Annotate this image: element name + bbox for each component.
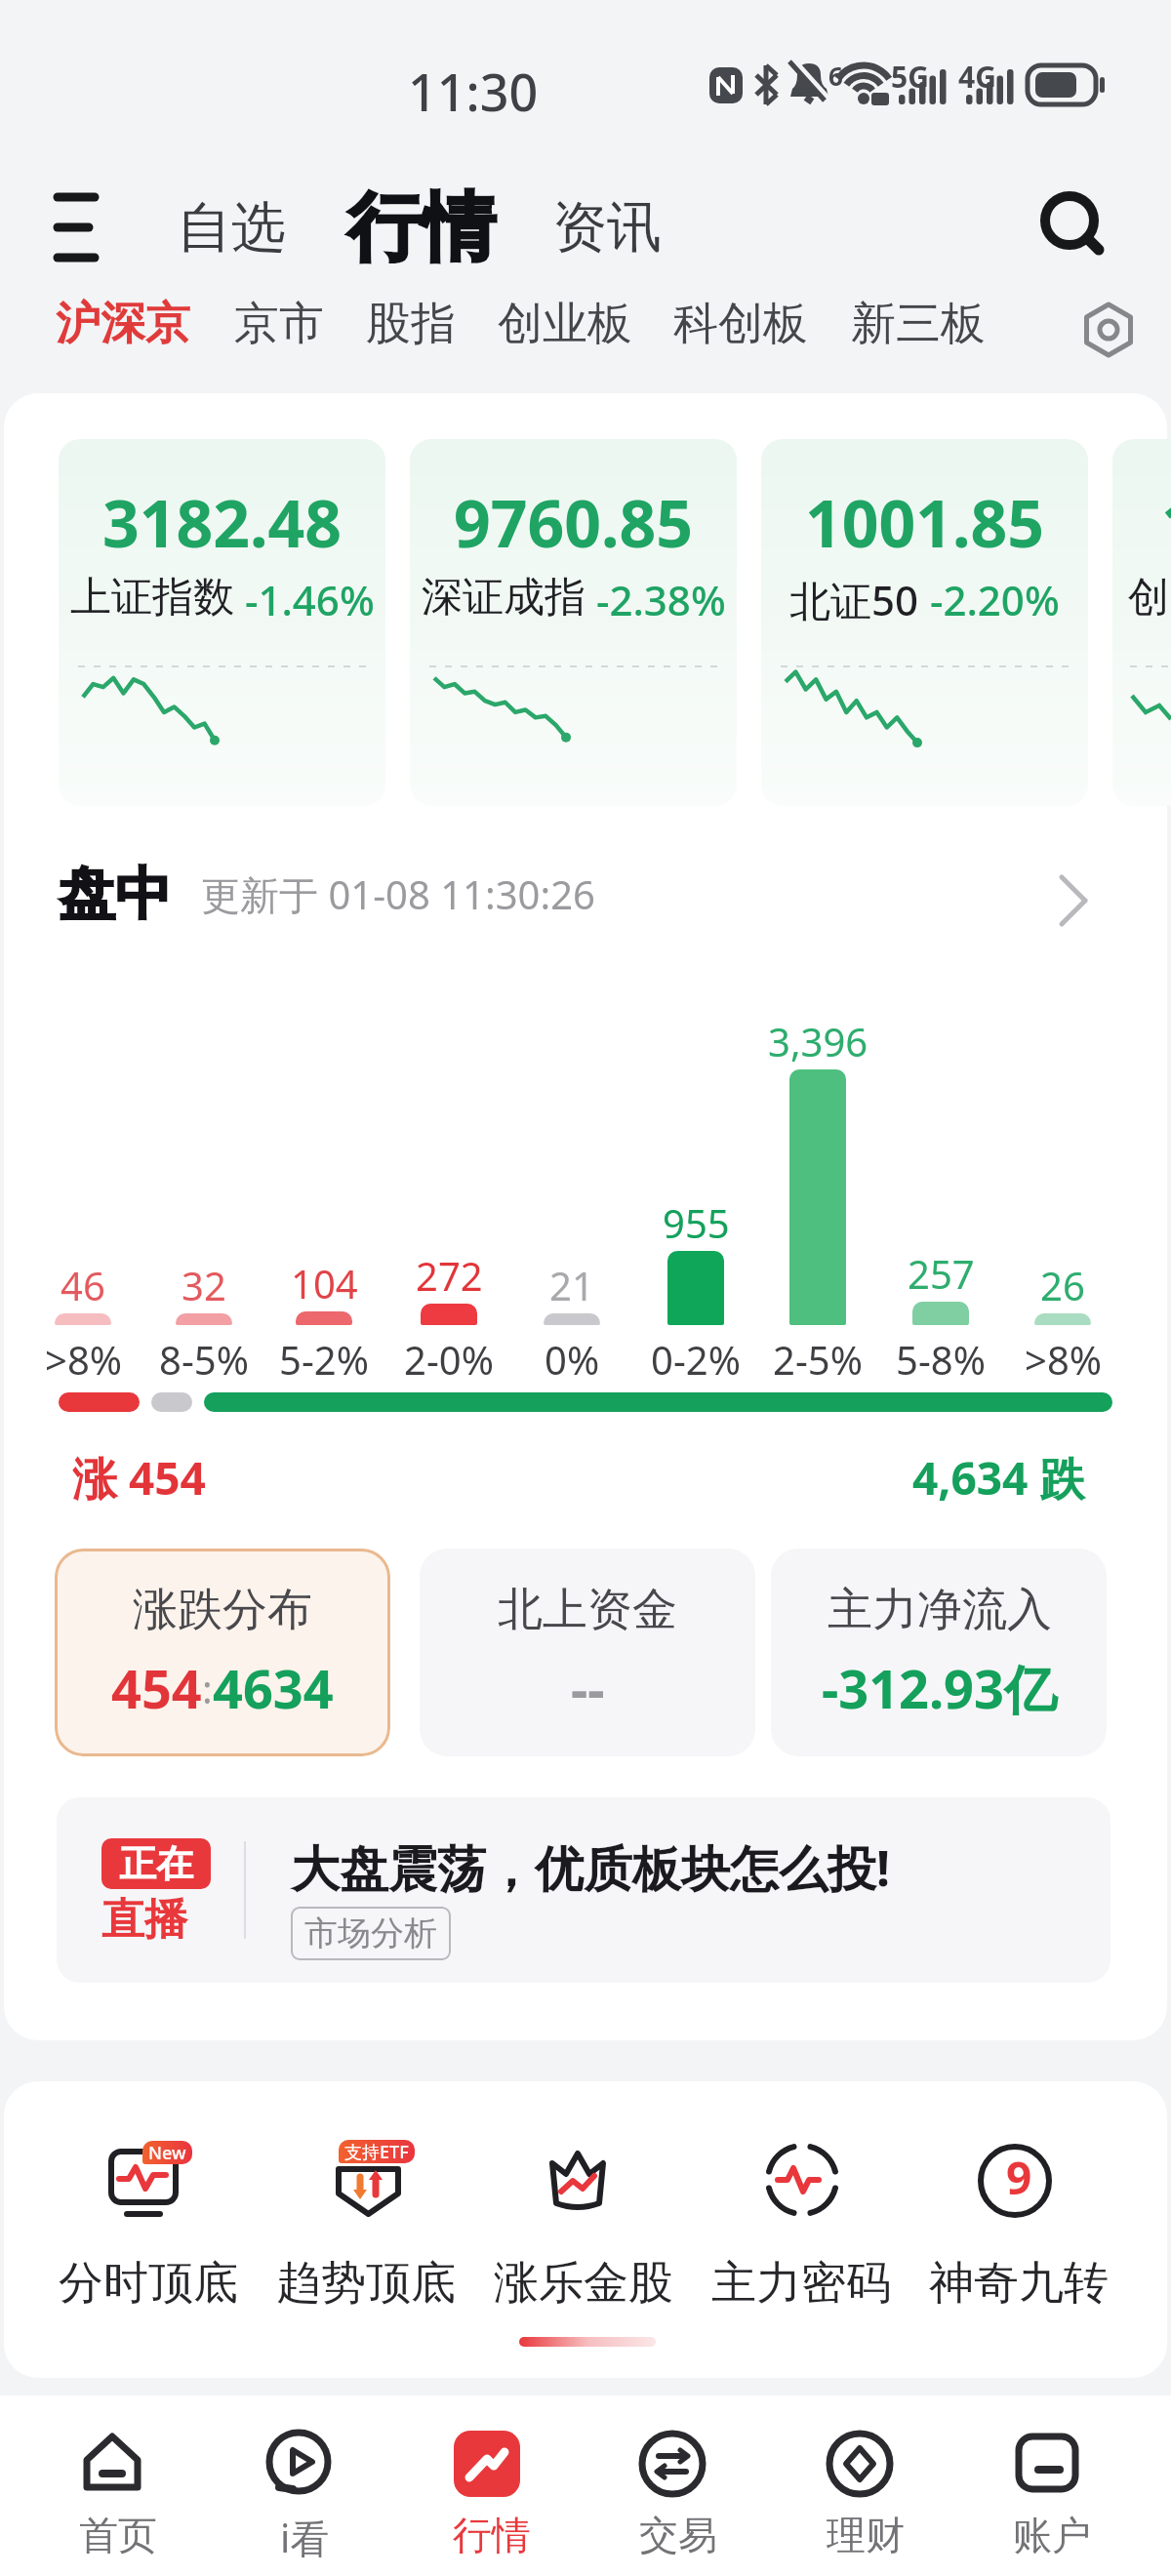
staticText: 4G bbox=[958, 57, 996, 97]
button[interactable]: 理财 bbox=[783, 2405, 949, 2571]
staticText: 更新于 01-08 11:30:26 bbox=[201, 867, 595, 921]
button[interactable]: 3182.48 bbox=[59, 439, 385, 806]
staticText: 11:30 bbox=[408, 57, 539, 126]
staticText: 创 bbox=[1128, 572, 1169, 624]
staticText: 大盘震荡，优质板块怎么投! bbox=[291, 1834, 891, 1901]
staticText: 主力净流入 bbox=[828, 1582, 1052, 1638]
staticText: >8% bbox=[1025, 1333, 1102, 1386]
button[interactable]: 涨跌分布 bbox=[55, 1549, 390, 1756]
staticText: 直播 bbox=[101, 1893, 187, 1947]
button[interactable]: 自选 bbox=[177, 193, 286, 262]
button[interactable]: 资讯 bbox=[552, 193, 662, 262]
staticText: 北证50 bbox=[789, 572, 919, 627]
staticText: 神奇九转 bbox=[929, 2255, 1109, 2312]
button[interactable]: 账户 bbox=[969, 2405, 1135, 2571]
staticText: 3,396 bbox=[768, 1015, 868, 1067]
staticText: -2.20% bbox=[919, 572, 1060, 627]
staticText: 32 bbox=[182, 1259, 226, 1311]
button[interactable]: 沪深京 bbox=[56, 296, 190, 352]
staticText: -2.38% bbox=[585, 572, 726, 627]
button[interactable]: 北上资金 bbox=[420, 1549, 755, 1756]
staticText: 账户 bbox=[1013, 2511, 1091, 2559]
staticText: 4634 bbox=[213, 1652, 334, 1724]
button[interactable]: 主力净流入 bbox=[771, 1549, 1107, 1756]
staticText: -- bbox=[571, 1652, 605, 1724]
button[interactable]: i看 bbox=[222, 2405, 387, 2571]
staticText: 955 bbox=[663, 1196, 730, 1249]
button[interactable]: 9760.85 bbox=[410, 439, 737, 806]
button[interactable]: 首页 bbox=[35, 2405, 201, 2571]
staticText: 0% bbox=[545, 1333, 600, 1386]
staticText: 趋势顶底 bbox=[276, 2255, 456, 2312]
staticText: 9760.85 bbox=[454, 478, 694, 566]
button[interactable]: 科创板 bbox=[673, 296, 808, 352]
staticText: 理财 bbox=[827, 2511, 905, 2559]
staticText: 21 bbox=[549, 1259, 594, 1311]
staticText: 0-2% bbox=[651, 1333, 741, 1386]
staticText: 2-5% bbox=[773, 1333, 863, 1386]
button[interactable] bbox=[56, 191, 101, 260]
staticText: 257 bbox=[908, 1247, 975, 1300]
button[interactable]: 分时顶底 bbox=[51, 2130, 246, 2374]
staticText: 上证指数 bbox=[70, 572, 234, 624]
staticText: 涨跌分布 bbox=[133, 1582, 312, 1638]
button[interactable]: 交易 bbox=[595, 2405, 761, 2571]
staticText: 深证成指 bbox=[422, 572, 585, 624]
staticText: 4,634 跌 bbox=[912, 1447, 1085, 1509]
staticText: 2-0% bbox=[404, 1333, 494, 1386]
button[interactable]: 新三板 bbox=[851, 296, 986, 352]
staticText: 行情 bbox=[453, 2511, 531, 2559]
staticText: 盘中 bbox=[59, 859, 172, 930]
staticText: >8% bbox=[45, 1333, 122, 1386]
button[interactable]: 趋势顶底 bbox=[268, 2130, 464, 2374]
staticText: 分时顶底 bbox=[59, 2255, 238, 2312]
staticText: 正在 bbox=[119, 1840, 193, 1887]
staticText: New bbox=[148, 2141, 186, 2164]
staticText: i看 bbox=[280, 2511, 330, 2564]
staticText: 首页 bbox=[79, 2511, 157, 2559]
staticText: 1001.85 bbox=[805, 478, 1045, 566]
staticText: 1 bbox=[1161, 478, 1171, 566]
button[interactable]: 股指 bbox=[366, 296, 456, 352]
button[interactable]: 1001.85 bbox=[761, 439, 1088, 806]
button[interactable]: 行情 bbox=[347, 181, 496, 275]
staticText: 涨乐金股 bbox=[494, 2255, 673, 2312]
button[interactable]: 行情 bbox=[409, 2405, 575, 2571]
staticText: 9 bbox=[1006, 2147, 1032, 2208]
button[interactable]: 主力密码 bbox=[704, 2130, 899, 2374]
staticText: 6 bbox=[828, 59, 843, 93]
button[interactable]: 正在 bbox=[57, 1797, 1110, 1983]
staticText: 46 bbox=[61, 1259, 105, 1311]
staticText: 272 bbox=[416, 1249, 483, 1302]
staticText: 北上资金 bbox=[498, 1582, 677, 1638]
staticText: 3182.48 bbox=[102, 478, 343, 566]
staticText: 104 bbox=[291, 1257, 358, 1309]
button[interactable]: 盘中 bbox=[59, 859, 595, 930]
staticText: 5G bbox=[891, 57, 929, 97]
button[interactable]: 京市 bbox=[234, 296, 324, 352]
staticText: 454 bbox=[111, 1652, 202, 1724]
button[interactable]: 创业板 bbox=[498, 296, 632, 352]
staticText: 5-2% bbox=[279, 1333, 369, 1386]
button[interactable]: 涨乐金股 bbox=[486, 2130, 681, 2374]
button[interactable]: 9 bbox=[921, 2130, 1116, 2374]
staticText: 26 bbox=[1040, 1259, 1085, 1311]
staticText: 主力密码 bbox=[711, 2255, 891, 2312]
staticText: 市场分析 bbox=[304, 1912, 437, 1954]
staticText: : bbox=[202, 1662, 213, 1714]
button[interactable] bbox=[1042, 193, 1105, 256]
staticText: 8-5% bbox=[159, 1333, 249, 1386]
staticText: -312.93亿 bbox=[822, 1652, 1057, 1724]
staticText: -1.46% bbox=[234, 572, 375, 627]
staticText: 5-8% bbox=[896, 1333, 986, 1386]
staticText: 支持ETF bbox=[344, 2140, 409, 2163]
button[interactable]: 1 bbox=[1112, 439, 1171, 806]
button[interactable] bbox=[1081, 302, 1136, 357]
staticText: 涨 454 bbox=[72, 1447, 206, 1509]
staticText: 交易 bbox=[639, 2511, 717, 2559]
